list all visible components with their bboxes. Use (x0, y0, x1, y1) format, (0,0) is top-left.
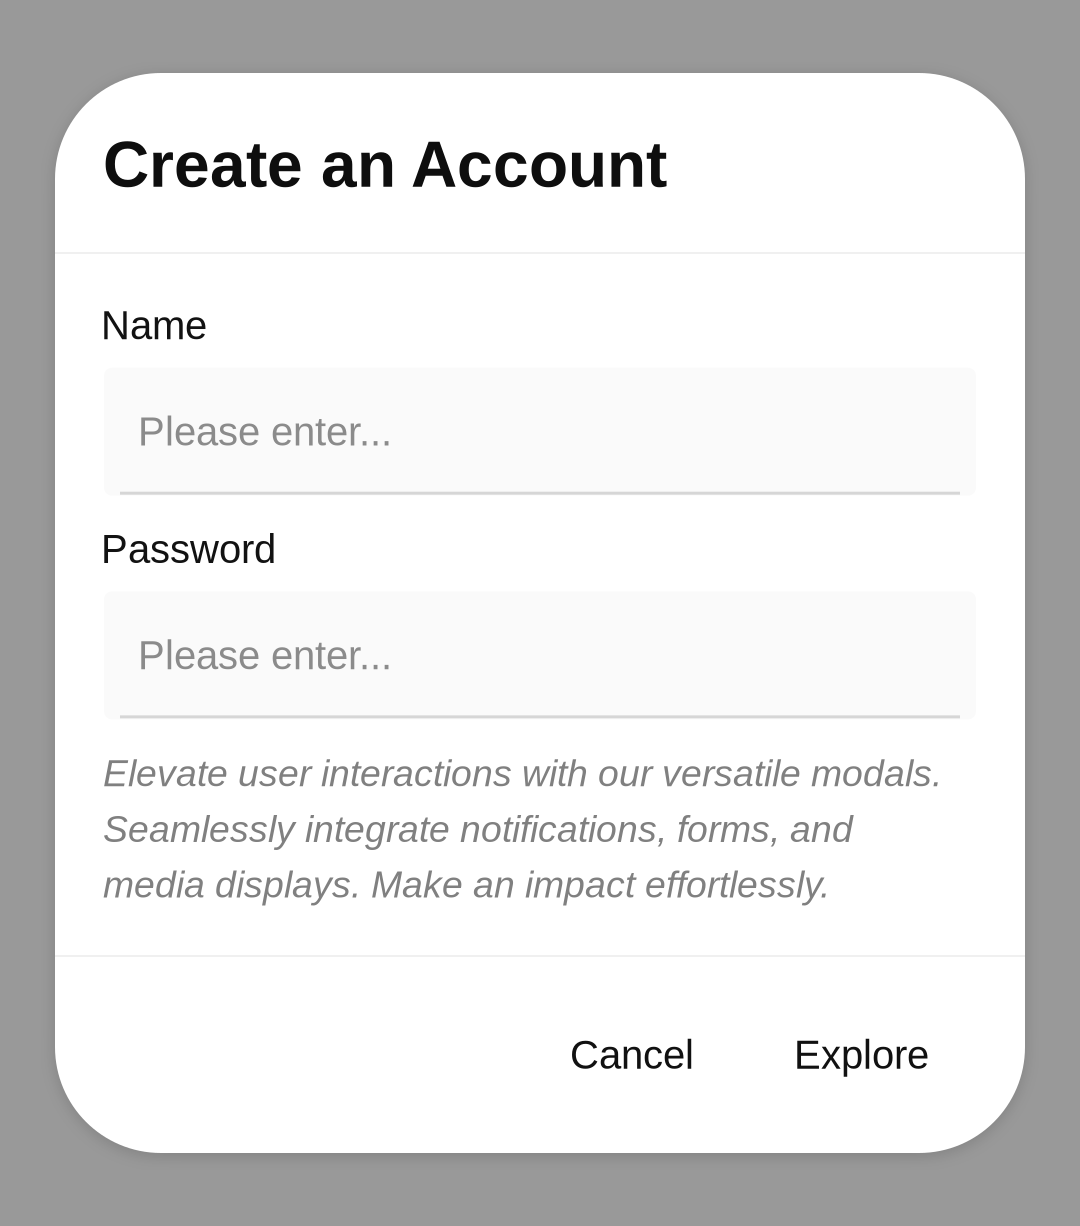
staticText: Elevate user interactions with our versa… (103, 752, 942, 905)
staticText: Create an Account (103, 129, 667, 200)
button[interactable]: Password (104, 591, 976, 719)
staticText: Password (101, 527, 276, 571)
button[interactable]: Cancel (520, 1007, 744, 1103)
staticText: Please enter... (138, 409, 392, 454)
button[interactable]: Explore (744, 1007, 979, 1103)
staticText: Name (101, 303, 207, 348)
staticText: Explore (794, 1033, 929, 1077)
staticText: Cancel (570, 1033, 694, 1077)
button[interactable]: Name (104, 368, 976, 496)
staticText: Please enter... (138, 633, 392, 678)
